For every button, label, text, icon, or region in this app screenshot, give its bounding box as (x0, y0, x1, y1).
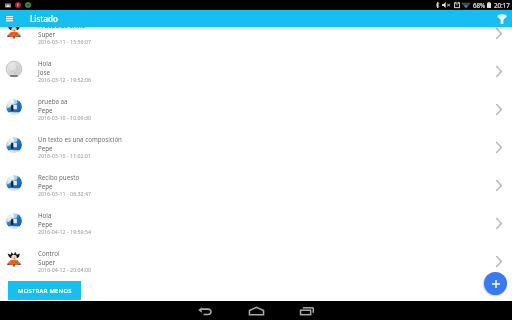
button[interactable]: Back (190, 301, 220, 320)
staticText: prueba aa (38, 97, 478, 105)
button[interactable]: Filter (494, 11, 510, 27)
button[interactable]: MOSTRAR MENOS (8, 281, 81, 300)
button[interactable]: Open navigation menu (1, 11, 17, 27)
staticText: 2016-04-12 - 20:04:00 (38, 266, 478, 273)
button[interactable]: Hola (0, 52, 512, 90)
staticText: Pepe (38, 144, 478, 152)
staticText: Control (38, 249, 478, 257)
staticText: MOSTRAR MENOS (18, 287, 72, 295)
button[interactable]: prueba aa (0, 90, 512, 128)
staticText: Recibo puesto (38, 173, 478, 181)
button[interactable]: Add (484, 272, 507, 295)
staticText: 2016-03-10 - 10:09:30 (38, 114, 478, 121)
staticText: 2016-03-10 - 11:02:01 (38, 152, 478, 159)
staticText: Pepe (38, 182, 478, 190)
staticText: Listado (30, 13, 58, 24)
staticText: 2016-04-12 - 19:59:54 (38, 228, 478, 235)
button[interactable]: Recent apps (292, 301, 322, 320)
staticText: Un texto es una composición (38, 135, 478, 143)
staticText: 2016-03-12 - 19:52:06 (38, 76, 478, 83)
staticText: Hola (38, 211, 478, 219)
staticText: Jose (38, 68, 478, 76)
button[interactable]: Hola (0, 204, 512, 242)
staticText: 2016-03-11 - 15:56:07 (38, 38, 478, 45)
staticText: Hola (38, 59, 478, 67)
staticText: 2016-03-11 - 06:32:47 (38, 190, 478, 197)
staticText: 68% (473, 1, 486, 9)
button[interactable]: Home (241, 301, 271, 320)
staticText: Prueba de envio (38, 21, 478, 29)
button[interactable]: Un texto es una composición (0, 128, 512, 166)
button[interactable]: Control (0, 242, 512, 280)
button[interactable]: Recibo puesto (0, 166, 512, 204)
staticText: 20:17 (494, 1, 510, 9)
staticText: Super (38, 30, 478, 38)
staticText: Pepe (38, 220, 478, 228)
staticText: Pepe (38, 106, 478, 114)
staticText: Super (38, 258, 478, 266)
button[interactable]: Prueba de envio (0, 14, 512, 52)
